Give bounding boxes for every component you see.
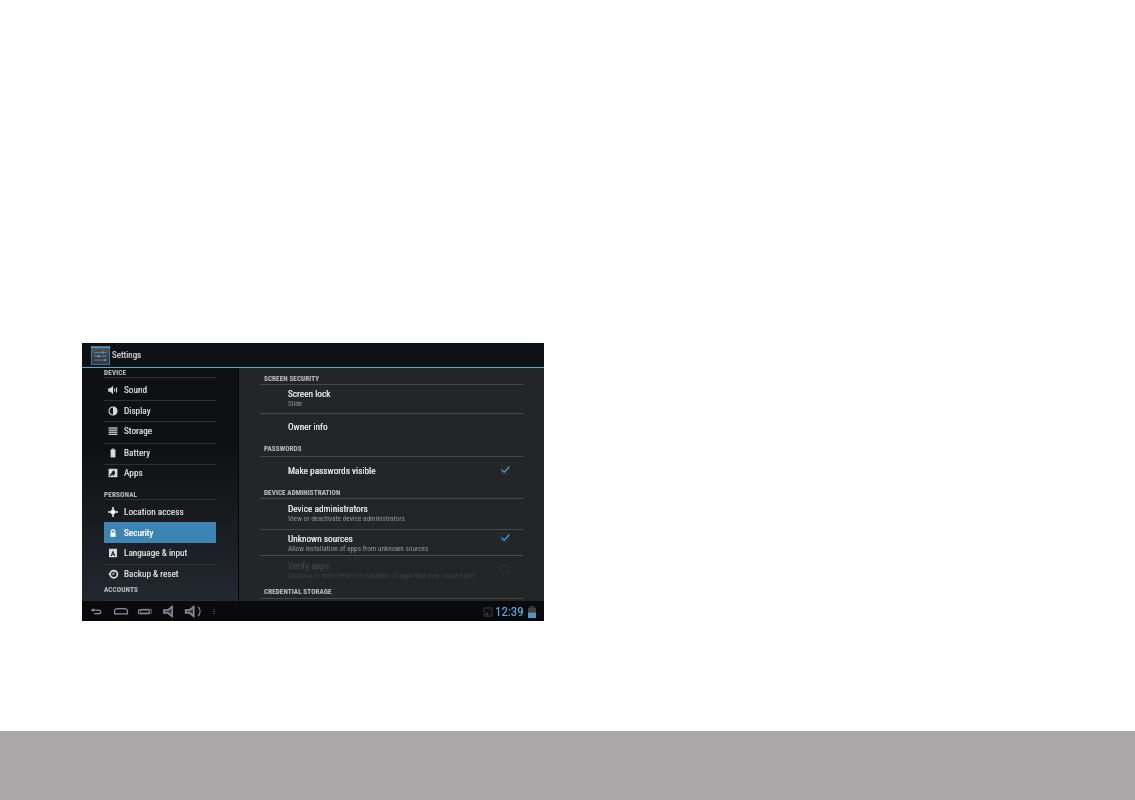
staticText: DEVICE xyxy=(104,368,127,376)
staticText: 12:39 xyxy=(495,604,524,619)
staticText: Screen lock xyxy=(288,388,331,399)
staticText: Battery xyxy=(124,447,151,458)
staticText: Disallow or warn before installation of … xyxy=(288,571,475,580)
staticText: Settings xyxy=(112,350,142,361)
staticText: Language & input xyxy=(124,547,188,558)
staticText: Make passwords visible xyxy=(288,465,376,476)
staticText: View or deactivate device administrators xyxy=(288,514,405,523)
staticText: Location access xyxy=(124,506,184,517)
button[interactable]: Language & input xyxy=(104,542,216,563)
button[interactable]: Back xyxy=(85,601,107,621)
button[interactable]: Apps xyxy=(104,462,216,483)
button[interactable]: Recent apps xyxy=(134,601,156,621)
staticText: SCREEN SECURITY xyxy=(264,374,320,382)
button[interactable]: Backup & reset xyxy=(104,563,216,584)
staticText: CREDENTIAL STORAGE xyxy=(264,587,332,595)
staticText: Unknown sources xyxy=(288,533,353,544)
button[interactable]: Screen lock xyxy=(238,388,544,408)
button[interactable]: Security xyxy=(104,522,216,543)
staticText: Slide xyxy=(288,399,303,408)
button[interactable]: Unknown sources xyxy=(238,533,544,553)
button[interactable]: Home xyxy=(110,601,132,621)
button[interactable]: Settings xyxy=(91,346,110,365)
staticText: ACCOUNTS xyxy=(104,585,139,593)
staticText: Backup & reset xyxy=(124,568,179,579)
staticText: Security xyxy=(124,527,154,538)
staticText: DEVICE ADMINISTRATION xyxy=(264,488,341,496)
button[interactable]: Volume down xyxy=(158,601,180,621)
staticText: Apps xyxy=(124,467,143,478)
button[interactable]: Battery xyxy=(104,442,216,463)
button[interactable]: Display xyxy=(104,400,216,421)
button[interactable]: Storage xyxy=(104,420,216,441)
staticText: Verify apps xyxy=(288,560,330,571)
staticText: Sound xyxy=(124,384,147,395)
button[interactable]: Volume up xyxy=(181,601,203,621)
staticText: Storage xyxy=(124,425,153,436)
staticText: Display xyxy=(124,405,151,416)
staticText: Allow installation of apps from unknown … xyxy=(288,544,429,553)
button[interactable]: Location access xyxy=(104,501,216,522)
button[interactable]: Verify apps xyxy=(238,560,544,580)
button[interactable]: Make passwords visible xyxy=(238,465,544,476)
staticText: Owner info xyxy=(288,421,328,432)
button[interactable]: Menu xyxy=(203,601,225,621)
button[interactable]: Sound xyxy=(104,379,216,400)
staticText: PASSWORDS xyxy=(264,444,302,452)
staticText: PERSONAL xyxy=(104,490,138,498)
button[interactable]: Owner info xyxy=(238,421,544,432)
staticText: Device administrators xyxy=(288,503,368,514)
button[interactable]: Device administrators xyxy=(238,503,544,523)
